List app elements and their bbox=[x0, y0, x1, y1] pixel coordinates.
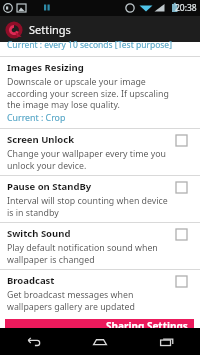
button[interactable]: Back bbox=[0, 328, 66, 355]
staticText: Downscale or upscale your image accordin… bbox=[7, 76, 181, 110]
staticText: Play default notification sound when wal… bbox=[7, 242, 170, 265]
button[interactable]: Broadcast bbox=[0, 270, 200, 316]
button[interactable]: Current : every 10 seconds [Test purpose… bbox=[0, 42, 200, 56]
button[interactable]: Pause on StandBy bbox=[0, 176, 200, 222]
button[interactable]: Screen Unlock bbox=[0, 129, 200, 175]
staticText: Change your wallpaper every time you unl… bbox=[7, 148, 170, 171]
staticText: 20:38 bbox=[175, 2, 197, 14]
staticText: Get broadcast messages when wallpapers g… bbox=[7, 289, 170, 312]
button[interactable]: Recent apps bbox=[133, 328, 200, 355]
staticText: Interval will stop counting when device … bbox=[7, 195, 170, 218]
staticText: Current : Crop bbox=[7, 112, 66, 124]
button[interactable]: Images Resizing bbox=[0, 57, 200, 128]
button[interactable]: Switch Sound bbox=[0, 223, 200, 269]
staticText: Images Resizing bbox=[7, 61, 84, 74]
staticText: Pause on StandBy bbox=[7, 180, 92, 193]
staticText: Screen Unlock bbox=[7, 133, 75, 146]
button[interactable]: Home bbox=[66, 328, 133, 355]
staticText: Current : every 10 seconds [Test purpose… bbox=[7, 39, 172, 51]
staticText: Settings bbox=[29, 22, 71, 37]
staticText: Switch Sound bbox=[7, 227, 71, 240]
staticText: Broadcast bbox=[7, 274, 55, 287]
button[interactable]: Sharing Settings bbox=[5, 319, 194, 328]
button[interactable]: App logo, navigate up bbox=[4, 20, 23, 39]
staticText: Sharing Settings bbox=[106, 319, 188, 328]
